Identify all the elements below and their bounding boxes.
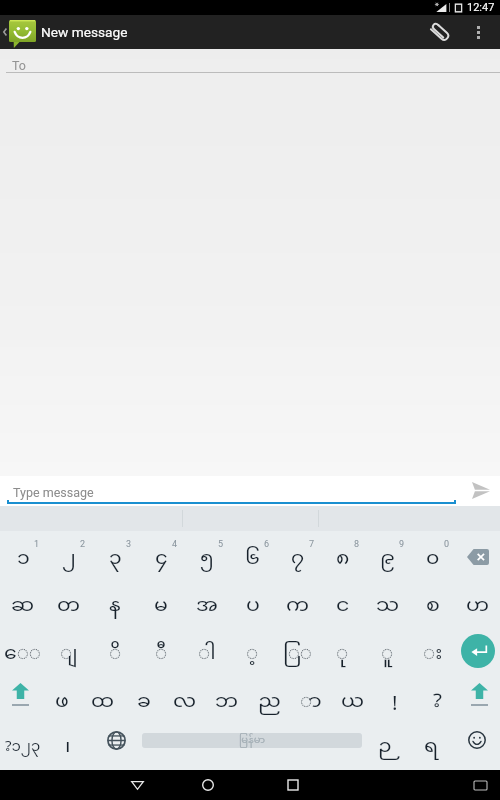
button[interactable]: င <box>320 583 365 629</box>
button[interactable]: ၄ <box>138 531 184 583</box>
button[interactable]: Send <box>462 476 500 504</box>
button[interactable]: ◌ါ <box>184 629 230 672</box>
staticText: ဆ <box>11 592 35 620</box>
staticText: ၈ <box>336 545 350 573</box>
button[interactable]: Shift <box>458 672 500 717</box>
button[interactable]: Shift <box>0 672 41 717</box>
staticText: က <box>286 592 310 620</box>
staticText: 8 <box>354 539 360 550</box>
staticText: Type message <box>13 485 94 500</box>
button[interactable]: ဖ <box>41 672 82 717</box>
button[interactable]: Change language <box>90 717 142 763</box>
staticText: ၄ <box>155 545 168 573</box>
button[interactable]: Emoji <box>454 717 500 763</box>
button[interactable]: Enter <box>455 629 500 672</box>
button[interactable]: က <box>275 583 320 629</box>
button[interactable]: ◌့ <box>230 629 275 672</box>
staticText: ၅ <box>200 545 214 573</box>
button[interactable]: အ <box>184 583 230 629</box>
button[interactable]: ၂ <box>46 531 92 583</box>
button[interactable]: Recents <box>250 770 335 800</box>
staticText: 3 <box>126 539 132 550</box>
button[interactable]: ပ <box>230 583 275 629</box>
button[interactable]: ! <box>374 672 416 717</box>
button[interactable]: န <box>92 583 138 629</box>
button[interactable]: Type message <box>0 476 462 504</box>
button[interactable]: ၊ <box>45 717 90 763</box>
button[interactable]: ◌ု <box>320 629 365 672</box>
staticText: ◌ျ <box>60 640 78 668</box>
staticText: ၁ <box>17 545 30 573</box>
button[interactable]: ေ◌ <box>0 629 46 672</box>
button[interactable]: ◌ီ <box>138 629 184 672</box>
staticText: ည <box>258 688 281 716</box>
button[interactable]: Back <box>110 770 165 800</box>
button[interactable]: Home <box>165 770 250 800</box>
staticText: ၆ <box>245 545 260 573</box>
button[interactable]: ◌ူ <box>365 629 410 672</box>
staticText: 7 <box>309 539 315 550</box>
staticText: သ <box>376 592 400 620</box>
button[interactable]: သ <box>365 583 410 629</box>
staticText: ◌ူ <box>381 640 394 668</box>
staticText: 0 <box>444 539 450 550</box>
staticText: ဉ <box>378 733 392 761</box>
button[interactable]: ဆ <box>0 583 46 629</box>
staticText: ! <box>392 688 398 716</box>
button[interactable]: ၁ <box>0 531 46 583</box>
button[interactable]: ၀ <box>410 531 455 583</box>
button[interactable]: ◌ာ <box>290 672 332 717</box>
staticText: န <box>109 592 121 620</box>
staticText: ? <box>433 688 442 716</box>
button[interactable]: Attach <box>416 15 464 49</box>
button[interactable]: ၇ <box>275 531 320 583</box>
button[interactable]: ၃ <box>92 531 138 583</box>
button[interactable]: ၉ <box>365 531 410 583</box>
button[interactable]: ◌ိ <box>92 629 138 672</box>
staticText: ၊ <box>65 733 71 761</box>
button[interactable]: ြ◌ <box>275 629 320 672</box>
button[interactable]: ?၁၂၃ <box>0 717 45 763</box>
staticText: စ <box>426 592 440 620</box>
button[interactable]: တ <box>46 583 92 629</box>
button[interactable]: မြန်မာ <box>142 733 362 748</box>
button[interactable]: လ <box>164 672 206 717</box>
button[interactable]: Enter <box>461 634 495 668</box>
other: Backspace <box>467 549 489 565</box>
button[interactable]: ၅ <box>184 531 230 583</box>
button[interactable]: ဉ <box>362 717 408 763</box>
button[interactable]: ထ <box>82 672 123 717</box>
staticText: 6 <box>264 539 270 550</box>
button[interactable]: Backspace <box>455 531 500 583</box>
button[interactable]: ယ <box>332 672 374 717</box>
button[interactable]: ◌း <box>410 629 455 672</box>
button[interactable]: Switch keyboard <box>460 770 500 800</box>
staticText: မ <box>154 592 168 620</box>
staticText: ◌့ <box>246 640 259 668</box>
button[interactable]: More options <box>462 15 495 49</box>
staticText: 4 <box>172 539 178 550</box>
button[interactable]: ည <box>248 672 290 717</box>
button[interactable]: ခ <box>123 672 164 717</box>
staticText: ဘ <box>215 688 239 716</box>
button[interactable] <box>0 15 38 49</box>
button[interactable]: ဟ <box>455 583 500 629</box>
staticText: ထ <box>91 688 115 716</box>
staticText: မြန်မာ <box>239 734 266 748</box>
button[interactable]: မ <box>138 583 184 629</box>
button[interactable]: ရ <box>408 717 454 763</box>
staticText: ?၁၂၃ <box>5 737 41 757</box>
button[interactable]: ◌ျ <box>46 629 92 672</box>
other: Shift <box>12 683 29 706</box>
staticText: ြ◌ <box>283 640 313 668</box>
button[interactable]: စ <box>410 583 455 629</box>
button[interactable]: ဘ <box>206 672 248 717</box>
button[interactable]: ? <box>416 672 458 717</box>
staticText: To <box>12 58 26 73</box>
button[interactable]: ၆ <box>230 531 275 583</box>
button[interactable]: ၈ <box>320 531 365 583</box>
other: Change language <box>107 731 126 750</box>
other: Shift <box>471 683 488 706</box>
